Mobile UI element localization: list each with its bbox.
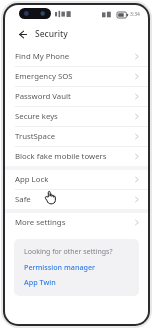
button[interactable]: App Twin	[24, 277, 56, 287]
staticText: Emergency SOS	[15, 71, 73, 82]
staticText: Safe	[15, 194, 31, 205]
button[interactable]: App Lock	[5, 170, 148, 189]
button[interactable]: Password Vault	[5, 87, 148, 106]
button[interactable]: Find My Phone	[5, 47, 148, 66]
staticText: Block fake mobile towers	[15, 151, 107, 162]
staticText: Secure keys	[15, 111, 58, 122]
button[interactable]: Permission manager	[24, 262, 96, 272]
staticText: App Lock	[15, 174, 49, 185]
button[interactable]: More settings	[5, 213, 148, 232]
button[interactable]: TrustSpace	[5, 127, 148, 146]
button[interactable]: Safe	[5, 190, 148, 209]
button[interactable]: Emergency SOS	[5, 67, 148, 86]
staticText: 3:34	[130, 11, 140, 18]
staticText: Security	[35, 28, 68, 40]
staticText: Find My Phone	[15, 51, 70, 62]
staticText: Password Vault	[15, 91, 71, 102]
staticText: App Twin	[24, 277, 56, 287]
button[interactable]: Block fake mobile towers	[5, 147, 148, 166]
staticText: More settings	[15, 217, 66, 228]
button[interactable]: Back	[14, 26, 30, 42]
staticText: Permission manager	[24, 262, 96, 272]
button[interactable]: Secure keys	[5, 107, 148, 126]
staticText: Looking for other settings?	[24, 247, 113, 257]
staticText: TrustSpace	[15, 131, 56, 142]
